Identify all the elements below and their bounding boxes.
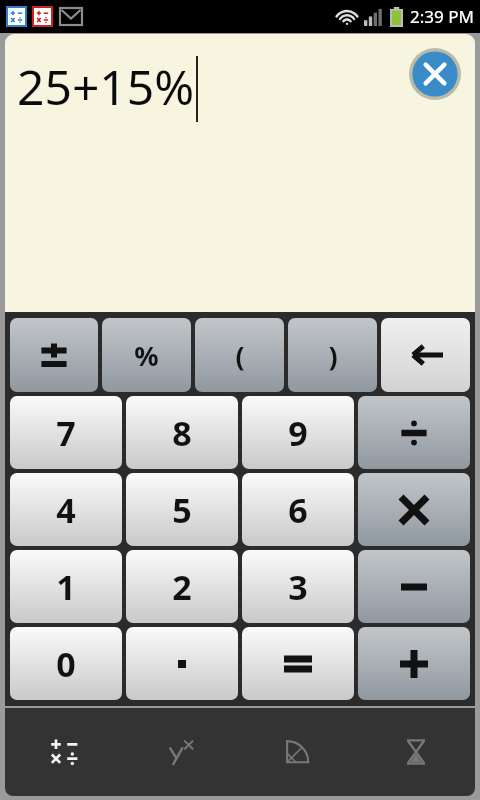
button[interactable]: 9 (242, 396, 354, 469)
staticText: ) (328, 337, 338, 374)
button[interactable]: 3 (242, 550, 354, 623)
button[interactable]: 2 (126, 550, 238, 623)
button[interactable]: 8 (126, 396, 238, 469)
button[interactable]: Power functions (122, 708, 239, 796)
staticText: 6 (288, 487, 308, 533)
button[interactable] (358, 396, 470, 469)
button[interactable] (358, 473, 470, 546)
button[interactable]: 5 (126, 473, 238, 546)
button[interactable]: 7 (10, 396, 122, 469)
button[interactable]: ( (195, 318, 284, 392)
button[interactable]: 4 (10, 473, 122, 546)
button[interactable]: % (102, 318, 191, 392)
staticText: 2 (172, 564, 192, 610)
button[interactable]: 25+15% (5, 34, 475, 312)
button[interactable] (126, 627, 238, 700)
button[interactable] (381, 318, 470, 392)
button[interactable]: ) (288, 318, 377, 392)
staticText: 8 (172, 410, 192, 456)
staticText: 3 (288, 564, 308, 610)
button[interactable] (242, 627, 354, 700)
staticText: 25+15% (17, 54, 195, 119)
button[interactable]: History (357, 708, 475, 796)
button[interactable]: Geometry (239, 708, 357, 796)
staticText: 4 (56, 487, 76, 533)
button[interactable] (10, 318, 98, 392)
staticText: 2:39 PM (410, 5, 474, 28)
staticText: 7 (56, 410, 76, 456)
button[interactable]: Basic calculator (5, 708, 122, 796)
staticText: 1 (56, 564, 76, 610)
button[interactable]: Clear (409, 48, 461, 100)
button[interactable]: 0 (10, 627, 122, 700)
staticText: 0 (56, 641, 76, 687)
button[interactable]: 6 (242, 473, 354, 546)
staticText: ( (235, 337, 245, 374)
staticText: 9 (288, 410, 308, 456)
button[interactable] (358, 627, 470, 700)
staticText: % (134, 337, 159, 374)
staticText: 5 (172, 487, 192, 533)
button[interactable]: 1 (10, 550, 122, 623)
button[interactable] (358, 550, 470, 623)
